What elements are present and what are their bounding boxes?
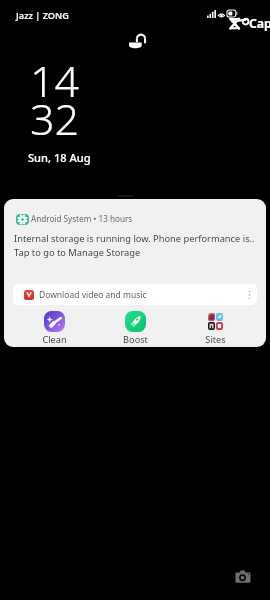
button[interactable]: Android System • 13 hours xyxy=(4,199,266,347)
button[interactable]: Clean xyxy=(30,311,78,346)
staticText: Boost xyxy=(123,333,148,346)
staticText: Jazz | ZONG xyxy=(16,9,69,21)
button[interactable]: Sites xyxy=(191,311,239,346)
staticText: Sites xyxy=(205,333,226,346)
staticText: Download video and music xyxy=(39,289,147,301)
staticText: Tap to go to Manage Storage xyxy=(14,246,141,259)
button[interactable]: Boost xyxy=(111,311,159,346)
button[interactable]: Unlocked xyxy=(129,34,145,50)
staticText: Internal storage is running low. Phone p… xyxy=(14,232,255,245)
staticText: 32 xyxy=(30,89,80,148)
staticText: Sun, 18 Aug xyxy=(28,150,91,165)
staticText: Android System • 13 hours xyxy=(31,213,133,224)
staticText: 14 xyxy=(30,51,80,110)
button[interactable]: Camera xyxy=(235,570,251,584)
staticText: Clean xyxy=(42,333,67,346)
staticText: Cap xyxy=(249,15,270,32)
button[interactable]: Download video and music xyxy=(13,284,257,305)
